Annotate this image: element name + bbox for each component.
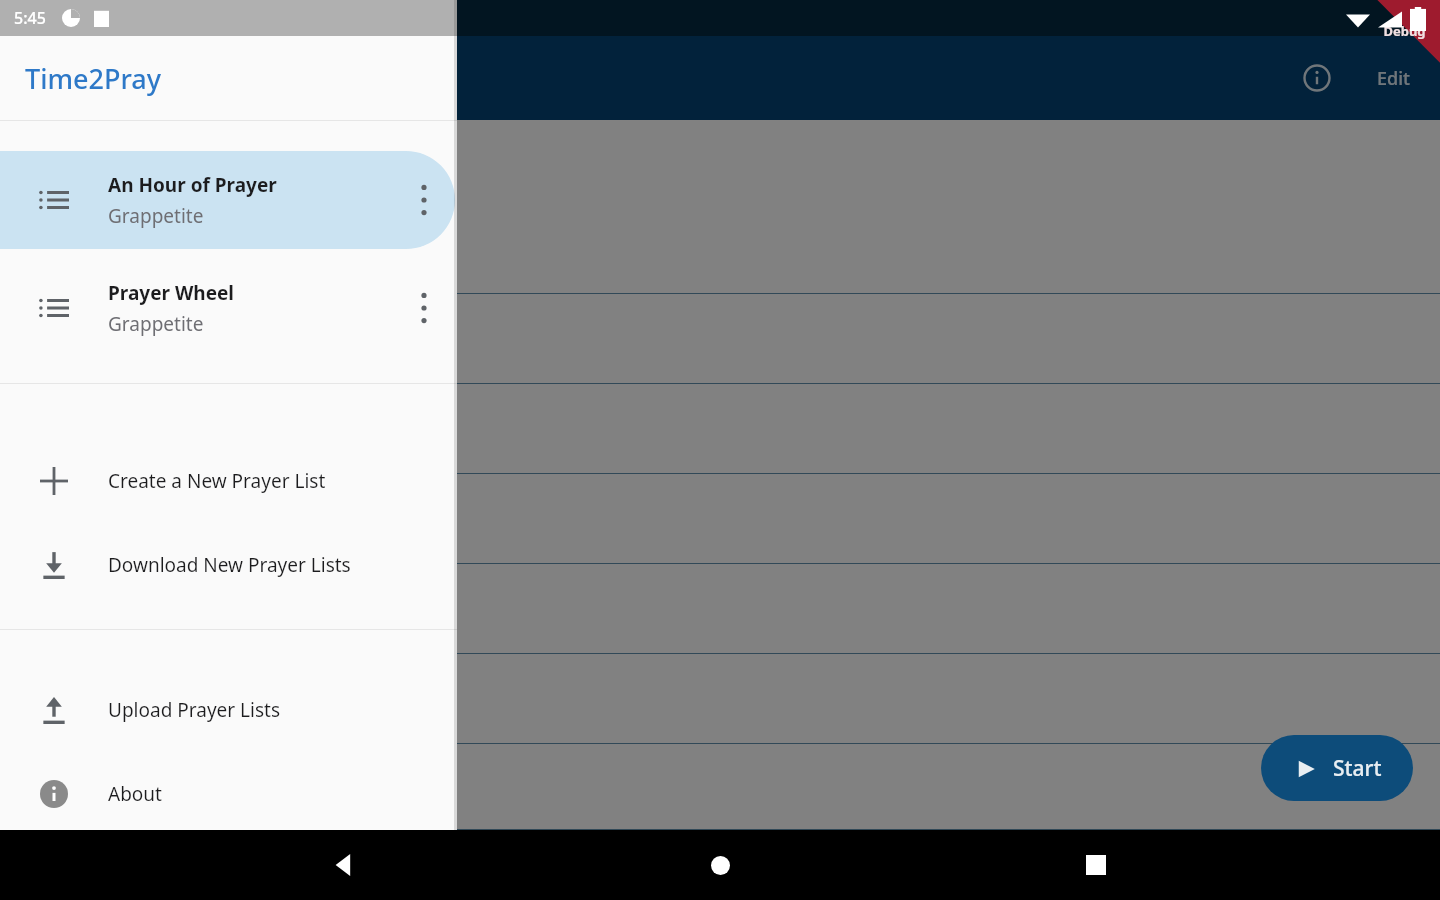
- button[interactable]: [0, 474, 1440, 564]
- button[interactable]: [0, 294, 1440, 384]
- staticText: Edit: [1377, 66, 1410, 91]
- button[interactable]: More options: [393, 259, 455, 357]
- button[interactable]: Download New Prayer Lists: [0, 523, 457, 607]
- staticText: Debug: [1383, 22, 1426, 40]
- button[interactable]: Start: [1261, 735, 1413, 801]
- staticText: Create a New Prayer List: [108, 468, 326, 494]
- staticText: An Hour of Prayer: [108, 172, 277, 198]
- button[interactable]: Upload Prayer Lists: [0, 668, 457, 752]
- button[interactable]: Prayer Wheel: [0, 259, 455, 357]
- staticText: Upload Prayer Lists: [108, 697, 280, 723]
- staticText: About: [108, 781, 162, 807]
- staticText: Download New Prayer Lists: [108, 552, 351, 578]
- staticText: Grappetite: [108, 203, 204, 229]
- staticText: Grappetite: [108, 311, 204, 337]
- button[interactable]: Create a New Prayer List: [0, 439, 457, 523]
- staticText: Prayer Wheel: [108, 280, 234, 306]
- button[interactable]: [0, 654, 1440, 744]
- button[interactable]: Info: [1289, 50, 1345, 106]
- button[interactable]: About: [0, 752, 457, 836]
- button[interactable]: Back: [312, 833, 376, 897]
- staticText: Start: [1333, 754, 1382, 783]
- other: Debug banner: [1332, 0, 1440, 108]
- button[interactable]: [0, 384, 1440, 474]
- button[interactable]: Recents: [1064, 833, 1128, 897]
- button[interactable]: An Hour of Prayer: [0, 151, 455, 249]
- button[interactable]: [0, 744, 1440, 830]
- button[interactable]: Home: [688, 833, 752, 897]
- button[interactable]: [0, 204, 1440, 294]
- button[interactable]: More options: [393, 151, 455, 249]
- staticText: Time2Pray: [25, 60, 162, 97]
- button[interactable]: [0, 564, 1440, 654]
- staticText: 5:45: [14, 7, 46, 29]
- button[interactable]: Edit: [1371, 58, 1416, 99]
